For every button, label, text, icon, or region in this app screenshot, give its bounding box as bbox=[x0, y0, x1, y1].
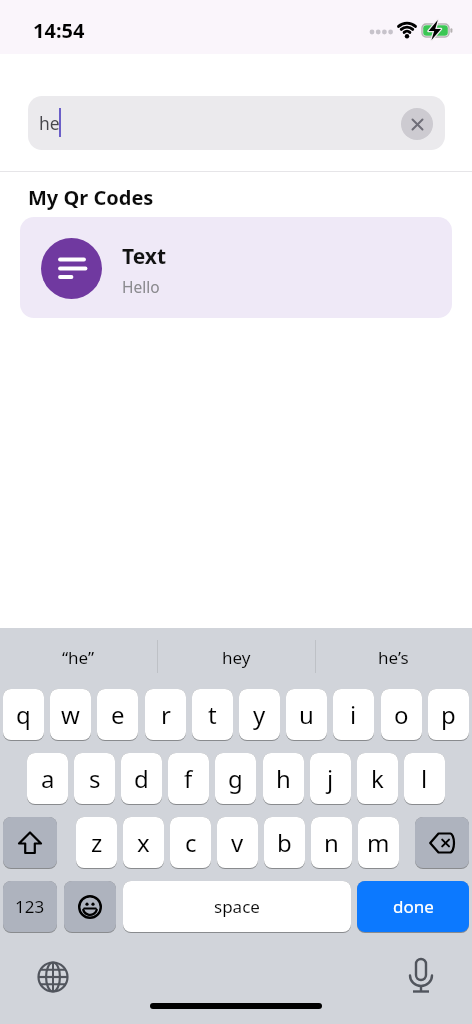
button[interactable]: n bbox=[311, 817, 352, 868]
button[interactable] bbox=[415, 817, 469, 868]
staticText: w bbox=[61, 698, 80, 731]
button[interactable]: s bbox=[74, 753, 115, 804]
button[interactable] bbox=[64, 881, 116, 932]
staticText: done bbox=[393, 895, 434, 918]
staticText: “he” bbox=[62, 646, 95, 669]
button[interactable]: a bbox=[27, 753, 68, 804]
staticText: hey bbox=[222, 646, 251, 669]
staticText: b bbox=[277, 826, 292, 859]
staticText: Hello bbox=[122, 276, 160, 297]
button[interactable]: p bbox=[428, 689, 469, 740]
button[interactable]: i bbox=[333, 689, 374, 740]
button[interactable]: u bbox=[286, 689, 327, 740]
staticText: z bbox=[91, 826, 103, 859]
button[interactable]: t bbox=[192, 689, 233, 740]
staticText: f bbox=[184, 762, 193, 795]
staticText: g bbox=[228, 762, 243, 795]
staticText: m bbox=[367, 826, 390, 859]
button[interactable]: v bbox=[217, 817, 258, 868]
staticText: k bbox=[371, 762, 384, 795]
staticText: o bbox=[394, 698, 409, 731]
staticText: space bbox=[214, 895, 260, 918]
button[interactable]: o bbox=[381, 689, 422, 740]
staticText: r bbox=[161, 698, 171, 731]
staticText: i bbox=[350, 698, 357, 731]
staticText: s bbox=[89, 762, 101, 795]
staticText: p bbox=[441, 698, 456, 731]
staticText: c bbox=[185, 826, 197, 859]
staticText: l bbox=[421, 762, 428, 795]
staticText: v bbox=[231, 826, 244, 859]
staticText: My Qr Codes bbox=[28, 184, 154, 211]
button[interactable]: e bbox=[97, 689, 138, 740]
button[interactable]: k bbox=[357, 753, 398, 804]
staticText: Text bbox=[122, 242, 167, 271]
button[interactable]: l bbox=[404, 753, 445, 804]
button[interactable]: done bbox=[357, 881, 469, 932]
button[interactable]: 123 bbox=[3, 881, 57, 932]
button[interactable] bbox=[401, 108, 433, 140]
staticText: 14:54 bbox=[33, 17, 85, 44]
button[interactable]: x bbox=[123, 817, 164, 868]
staticText: he bbox=[39, 111, 60, 135]
staticText: n bbox=[324, 826, 339, 859]
staticText: j bbox=[327, 762, 334, 795]
button[interactable]: w bbox=[50, 689, 91, 740]
staticText: q bbox=[16, 698, 31, 731]
staticText: t bbox=[208, 698, 217, 731]
button[interactable]: q bbox=[3, 689, 44, 740]
staticText: h bbox=[276, 762, 291, 795]
button[interactable]: y bbox=[239, 689, 280, 740]
staticText: 123 bbox=[15, 895, 45, 918]
staticText: y bbox=[253, 698, 266, 731]
button[interactable]: b bbox=[264, 817, 305, 868]
button[interactable]: Text bbox=[20, 217, 452, 318]
button[interactable]: j bbox=[310, 753, 351, 804]
staticText: d bbox=[134, 762, 149, 795]
staticText: e bbox=[111, 698, 125, 731]
button[interactable]: m bbox=[358, 817, 399, 868]
staticText: he’s bbox=[378, 646, 409, 669]
button[interactable]: g bbox=[215, 753, 256, 804]
staticText: a bbox=[41, 762, 55, 795]
button[interactable]: r bbox=[145, 689, 186, 740]
button[interactable]: he bbox=[28, 96, 445, 150]
staticText: x bbox=[137, 826, 150, 859]
button[interactable]: h bbox=[263, 753, 304, 804]
button[interactable] bbox=[3, 817, 57, 868]
staticText: u bbox=[299, 698, 314, 731]
button[interactable]: z bbox=[76, 817, 117, 868]
button[interactable]: c bbox=[170, 817, 211, 868]
button[interactable]: space bbox=[123, 881, 351, 932]
button[interactable]: d bbox=[121, 753, 162, 804]
button[interactable]: f bbox=[168, 753, 209, 804]
